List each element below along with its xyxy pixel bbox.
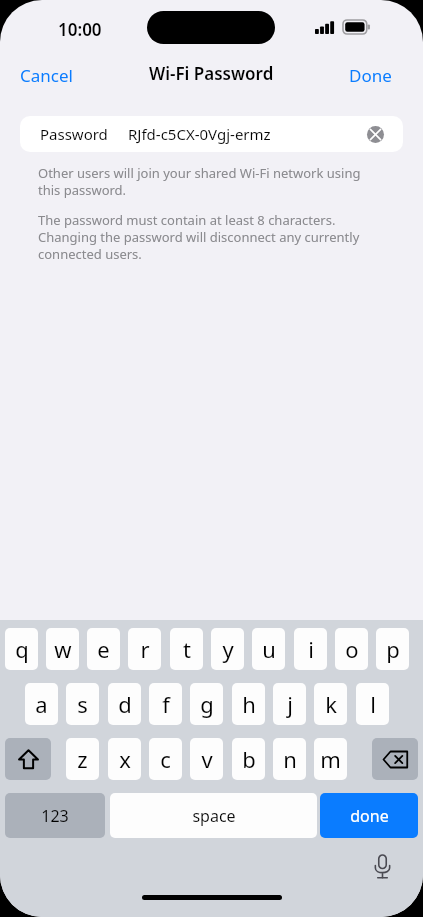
button[interactable]: Dictation	[365, 850, 399, 884]
button[interactable]: Backspace	[372, 738, 418, 780]
button[interactable]: a	[25, 683, 58, 725]
button[interactable]: q	[5, 628, 38, 670]
staticText: Done	[349, 64, 392, 87]
staticText: x	[119, 744, 131, 774]
button[interactable]: k	[314, 683, 347, 725]
staticText: n	[283, 744, 297, 774]
button[interactable]: b	[232, 738, 265, 780]
staticText: w	[54, 634, 72, 664]
staticText: o	[345, 634, 359, 664]
staticText: p	[386, 634, 400, 664]
staticText: t	[183, 634, 191, 664]
staticText: e	[97, 634, 110, 664]
staticText: q	[15, 634, 29, 664]
button[interactable]: v	[190, 738, 223, 780]
button[interactable]: e	[87, 628, 120, 670]
button[interactable]: n	[273, 738, 306, 780]
button[interactable]: f	[149, 683, 182, 725]
staticText: k	[325, 689, 337, 719]
staticText: b	[242, 744, 256, 774]
button[interactable]: i	[294, 628, 327, 670]
staticText: r	[140, 634, 150, 664]
button[interactable]: g	[190, 683, 223, 725]
staticText: The password must contain at least 8 cha…	[38, 211, 383, 263]
button[interactable]: Password	[20, 116, 403, 152]
button[interactable]: u	[252, 628, 285, 670]
staticText: m	[320, 744, 341, 774]
button[interactable]: r	[128, 628, 161, 670]
staticText: Password	[40, 124, 108, 144]
button[interactable]: Clear text	[364, 123, 386, 145]
staticText: 10:00	[58, 18, 102, 41]
button[interactable]: done	[320, 793, 418, 838]
staticText: i	[308, 634, 314, 664]
staticText: f	[162, 689, 170, 719]
button[interactable]: o	[335, 628, 368, 670]
staticText: RJfd-c5CX-0Vgj-ermz	[128, 124, 271, 144]
button[interactable]: d	[108, 683, 141, 725]
staticText: l	[370, 689, 376, 719]
staticText: s	[77, 689, 88, 719]
staticText: c	[160, 744, 171, 774]
button[interactable]: Cancel	[10, 60, 86, 90]
button[interactable]: t	[170, 628, 203, 670]
button[interactable]: Done	[349, 60, 413, 90]
staticText: g	[200, 689, 214, 719]
button[interactable]: s	[66, 683, 99, 725]
button[interactable]: x	[108, 738, 141, 780]
button[interactable]: space	[110, 793, 317, 838]
staticText: 123	[41, 805, 69, 827]
staticText: a	[35, 689, 48, 719]
button[interactable]: l	[356, 683, 389, 725]
staticText: u	[262, 634, 276, 664]
staticText: Other users will join your shared Wi-Fi …	[38, 164, 378, 199]
staticText: Cancel	[20, 64, 73, 87]
button[interactable]: j	[273, 683, 306, 725]
button[interactable]: 123	[5, 793, 105, 838]
button[interactable]: m	[314, 738, 347, 780]
button[interactable]: p	[376, 628, 409, 670]
button[interactable]: c	[149, 738, 182, 780]
staticText: h	[242, 689, 256, 719]
button[interactable]: y	[211, 628, 244, 670]
staticText: done	[350, 805, 389, 827]
button[interactable]: z	[66, 738, 99, 780]
staticText: Wi-Fi Password	[149, 62, 274, 85]
staticText: space	[192, 805, 236, 827]
staticText: z	[77, 744, 88, 774]
staticText: d	[118, 689, 132, 719]
button[interactable]: Shift	[5, 738, 51, 780]
staticText: v	[201, 744, 213, 774]
staticText: y	[222, 634, 234, 664]
staticText: j	[287, 689, 293, 719]
button[interactable]: h	[232, 683, 265, 725]
button[interactable]: w	[46, 628, 79, 670]
